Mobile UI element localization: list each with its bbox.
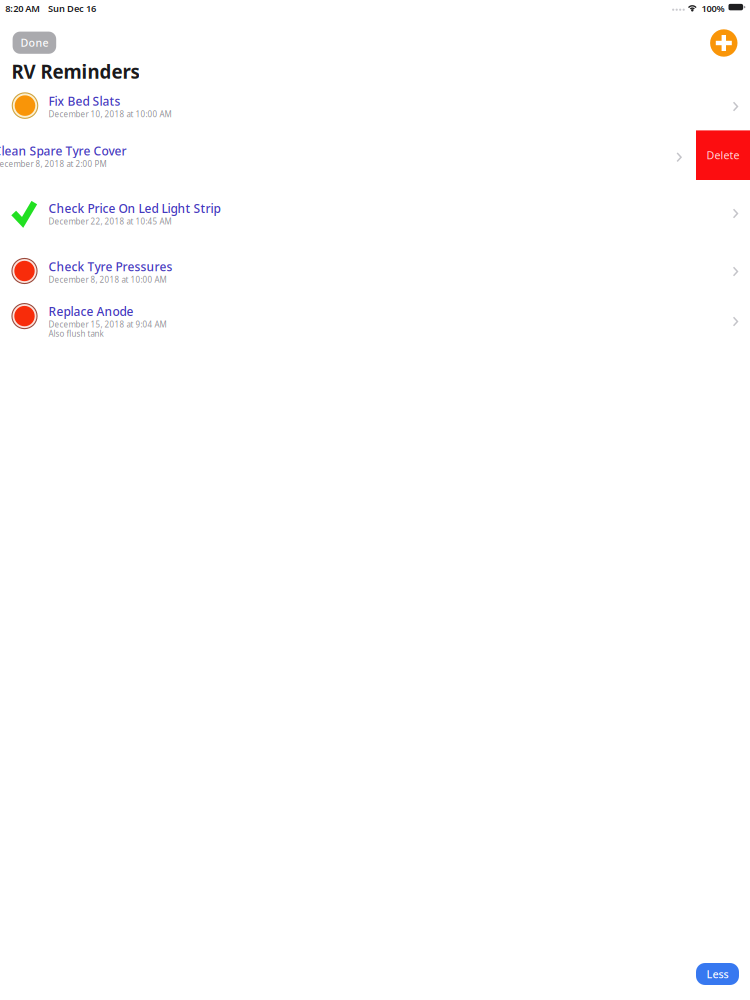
button[interactable]: Replace Anode <box>0 295 750 345</box>
staticText: Fix Bed Slats <box>48 93 120 109</box>
button[interactable]: Less <box>696 963 739 985</box>
staticText: December 8, 2018 at 2:00 PM <box>0 158 106 169</box>
staticText: 100% <box>701 2 724 15</box>
button[interactable]: Fix Bed Slats <box>0 85 750 134</box>
button[interactable]: Add reminder <box>710 29 737 57</box>
button[interactable]: Delete <box>696 130 750 180</box>
staticText: RV Reminders <box>11 59 139 84</box>
staticText: Less <box>706 967 728 981</box>
staticText: Check Price On Led Light Strip <box>48 200 220 216</box>
staticText: December 8, 2018 at 10:00 AM <box>48 274 166 285</box>
button[interactable]: Clean Spare Tyre Cover <box>0 134 750 192</box>
button[interactable]: Check Tyre Pressures <box>0 250 750 295</box>
staticText: Replace Anode <box>48 303 133 319</box>
staticText: Delete <box>706 148 739 162</box>
staticText: December 10, 2018 at 10:00 AM <box>48 109 171 119</box>
staticText: Clean Spare Tyre Cover <box>0 143 126 159</box>
staticText: Also flush tank <box>48 328 103 339</box>
button[interactable]: Check Price On Led Light Strip <box>0 192 750 250</box>
button[interactable]: Done <box>13 32 56 54</box>
staticText: December 22, 2018 at 10:45 AM <box>48 216 171 227</box>
staticText: 8:20 AM <box>5 2 40 15</box>
staticText: Check Tyre Pressures <box>48 259 172 275</box>
staticText: Sun Dec 16 <box>48 2 96 15</box>
staticText: December 15, 2018 at 9:04 AM <box>48 319 166 330</box>
staticText: Done <box>20 36 48 50</box>
